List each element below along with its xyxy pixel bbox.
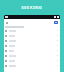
button[interactable] bbox=[5, 28, 58, 33]
button[interactable]: Menu bbox=[5, 21, 8, 24]
button[interactable] bbox=[5, 58, 58, 63]
staticText: SEEKING bbox=[21, 5, 43, 11]
button[interactable] bbox=[5, 38, 58, 43]
button[interactable]: Add bbox=[54, 21, 58, 24]
button[interactable] bbox=[5, 33, 58, 38]
button[interactable] bbox=[5, 43, 58, 48]
button[interactable] bbox=[5, 63, 58, 68]
button[interactable] bbox=[5, 48, 58, 53]
button[interactable] bbox=[5, 53, 58, 58]
